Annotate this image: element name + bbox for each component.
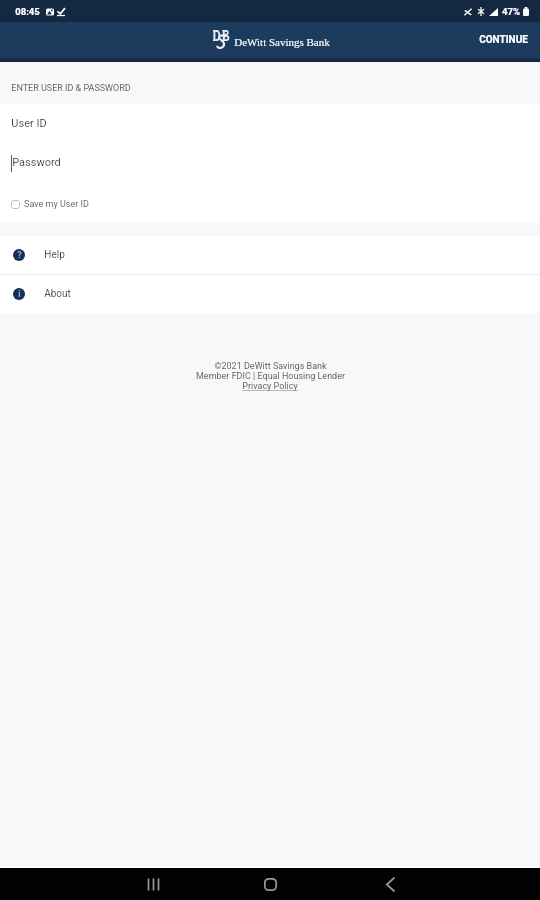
button[interactable]: Back: [370, 868, 410, 900]
button[interactable]: ?: [0, 236, 540, 274]
button[interactable]: Recent apps: [133, 868, 173, 900]
staticText: Member FDIC | Equal Housing Lender: [196, 371, 345, 382]
staticText: ?: [17, 250, 22, 261]
staticText: Password: [12, 156, 61, 169]
button[interactable]: CONTINUE: [467, 26, 540, 54]
button[interactable]: Privacy Policy: [242, 381, 298, 392]
staticText: ©2021 DeWitt Savings Bank: [214, 361, 327, 372]
staticText: 47%: [502, 6, 520, 17]
staticText: About: [44, 288, 71, 300]
staticText: CONTINUE: [479, 34, 528, 46]
staticText: ENTER USER ID & PASSWORD: [11, 83, 131, 94]
staticText: 08:45: [15, 6, 40, 17]
button[interactable]: Home: [250, 868, 290, 900]
staticText: DeWitt Savings Bank: [234, 36, 330, 48]
button[interactable]: i: [0, 275, 540, 313]
staticText: Save my User ID: [24, 199, 89, 210]
staticText: i: [18, 289, 21, 300]
button[interactable]: Save my User ID: [0, 192, 540, 216]
staticText: User ID: [11, 117, 47, 130]
staticText: Help: [44, 249, 65, 261]
